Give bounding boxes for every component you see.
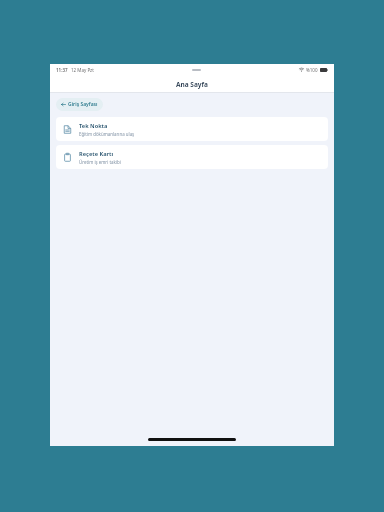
staticText: Giriş Sayfası xyxy=(68,101,98,108)
button[interactable]: Tek Nokta xyxy=(56,117,328,141)
staticText: Eğitim dökümanlarına ulaş xyxy=(79,131,135,137)
staticText: %100 xyxy=(306,67,318,73)
button[interactable]: Reçete Kartı xyxy=(56,145,328,169)
staticText: Tek Nokta xyxy=(79,122,108,130)
staticText: Ana Sayfa xyxy=(176,80,208,89)
staticText: 12 May Pzt xyxy=(71,67,94,73)
staticText: Reçete Kartı xyxy=(79,150,114,158)
button[interactable]: Giriş Sayfası xyxy=(56,98,103,111)
staticText: 11:37 xyxy=(56,67,68,73)
staticText: Üretim iş emri takibi xyxy=(79,159,121,165)
